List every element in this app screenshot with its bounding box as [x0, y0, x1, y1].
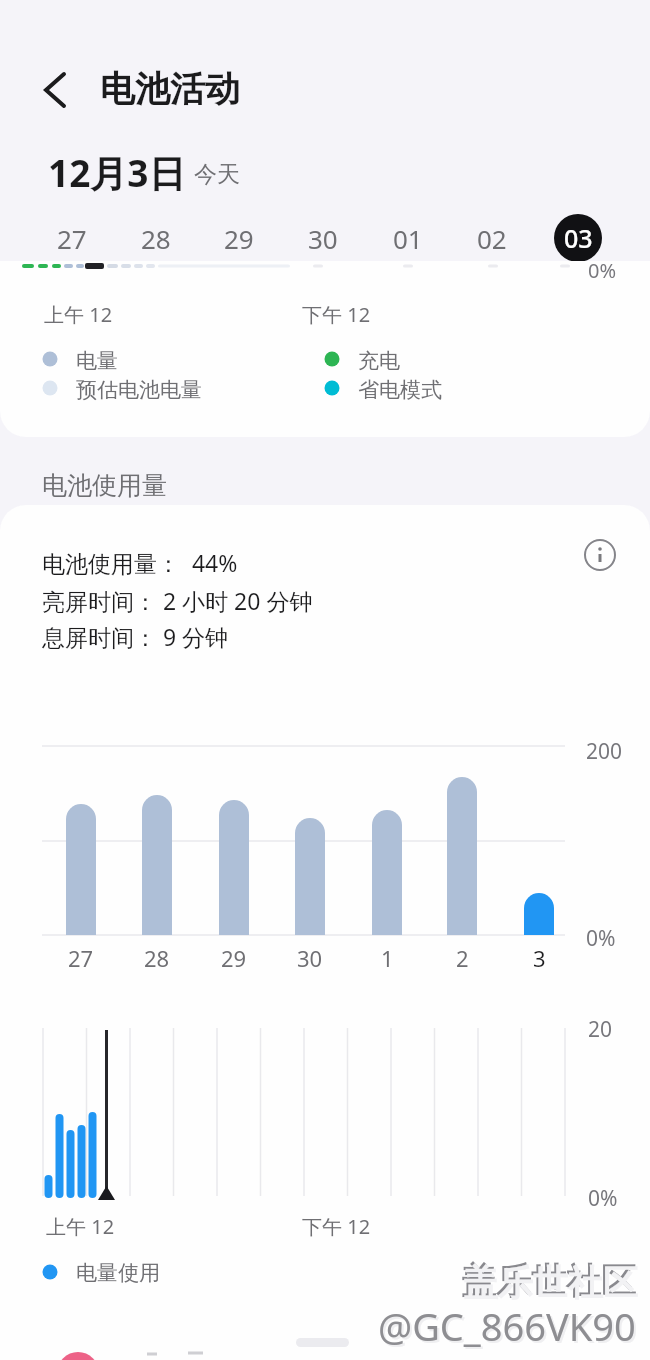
staticText: 28 [144, 943, 170, 973]
staticText: 息屏时间： 9 分钟 [42, 621, 229, 652]
button[interactable]: 28 [116, 216, 196, 260]
staticText: 27 [68, 943, 94, 973]
button[interactable]: 03 [554, 214, 602, 262]
staticText: 盖乐世社区 [461, 1259, 636, 1303]
staticText: 电池活动 [100, 67, 240, 111]
staticText: 电量使用 [76, 1260, 160, 1286]
staticText: 03 [564, 221, 593, 255]
button[interactable] [34, 66, 82, 114]
staticText: 0% [588, 1184, 618, 1213]
staticText: 电量 [76, 348, 118, 374]
staticText: 20 [588, 1015, 613, 1044]
button[interactable] [578, 533, 622, 577]
staticText: 29 [224, 221, 254, 256]
staticText: 盖乐世社区 [463, 1261, 638, 1305]
staticText: 29 [221, 943, 247, 973]
staticText: 30 [297, 943, 323, 973]
staticText: 2 [456, 943, 469, 973]
staticText: 电池使用量 [42, 470, 167, 501]
staticText: @GC_866VK90 [380, 1302, 638, 1354]
staticText: 下午 12 [302, 1213, 371, 1240]
staticText: 01 [393, 221, 423, 256]
staticText: 上午 12 [44, 301, 113, 328]
staticText: 28 [141, 221, 171, 256]
staticText: 今天 [194, 160, 240, 189]
staticText: 27 [57, 221, 87, 256]
staticText: 省电模式 [358, 377, 442, 403]
staticText: 电池使用量： 44% [42, 547, 238, 578]
staticText: 3 [533, 943, 546, 973]
staticText: 12月3日 [48, 147, 186, 198]
staticText: 下午 12 [302, 301, 371, 328]
staticText: 0% [588, 261, 617, 284]
button[interactable]: 29 [199, 216, 279, 260]
staticText: 充电 [358, 348, 400, 374]
staticText: @GC_866VK90 [378, 1300, 636, 1352]
staticText: 30 [308, 221, 338, 256]
staticText: 02 [477, 221, 507, 256]
staticText: 上午 12 [46, 1213, 115, 1240]
staticText: 预估电池电量 [76, 377, 202, 403]
button[interactable]: 27 [32, 216, 112, 260]
staticText: 200 [586, 737, 623, 766]
button[interactable]: 02 [452, 216, 532, 260]
staticText: 亮屏时间： 2 小时 20 分钟 [42, 585, 313, 616]
button[interactable]: 01 [368, 216, 448, 260]
button[interactable]: 30 [283, 216, 363, 260]
staticText: 1 [381, 943, 394, 973]
staticText: 0% [586, 924, 616, 953]
